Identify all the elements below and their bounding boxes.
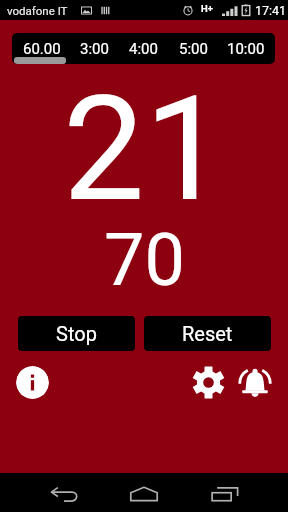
staticText: Stop	[56, 322, 97, 345]
button[interactable]: Info	[16, 366, 49, 399]
button[interactable]: 5:00	[169, 33, 217, 64]
staticText: 21	[63, 64, 226, 234]
button[interactable]: 10:00	[217, 33, 275, 64]
staticText: H+	[201, 3, 213, 14]
staticText: 4:00	[129, 40, 158, 58]
button[interactable]: Stop	[18, 316, 135, 351]
button[interactable]: Settings	[192, 366, 225, 399]
button[interactable]: Home	[124, 474, 164, 512]
staticText: 60.00	[23, 40, 61, 58]
staticText: 10:00	[227, 40, 265, 58]
staticText: 17:41	[255, 3, 287, 18]
staticText: 3:00	[80, 40, 109, 58]
staticText: vodafone IT	[7, 4, 68, 17]
button[interactable]: Back	[44, 474, 84, 512]
button[interactable]: 60.00	[12, 33, 71, 64]
button[interactable]: Recents	[205, 474, 245, 512]
staticText: Reset	[182, 322, 233, 345]
button[interactable]: 4:00	[117, 33, 169, 64]
staticText: 70	[104, 218, 185, 302]
button[interactable]: 3:00	[71, 33, 117, 64]
staticText: 5:00	[179, 40, 208, 58]
button[interactable]: Alarm	[238, 366, 272, 400]
button[interactable]: Reset	[144, 316, 271, 351]
